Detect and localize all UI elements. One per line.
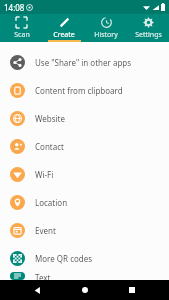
staticText: History	[94, 30, 118, 40]
button[interactable]: Website	[0, 104, 169, 132]
button[interactable]: Location	[0, 188, 169, 216]
button[interactable]: History	[85, 14, 127, 42]
staticText: Settings	[135, 30, 162, 40]
button[interactable]: Wi-Fi	[0, 160, 169, 188]
staticText: More QR codes	[35, 253, 93, 264]
staticText: Create	[53, 30, 75, 40]
button[interactable]: Event	[0, 216, 169, 244]
staticText: Event	[35, 225, 56, 236]
staticText: Content from clipboard	[35, 85, 123, 96]
button[interactable]: Content from clipboard	[0, 76, 169, 104]
staticText: Website	[35, 113, 66, 124]
staticText: Use "Share" in other apps	[35, 57, 132, 68]
staticText: 14:08	[4, 2, 25, 13]
button[interactable]: More QR codes	[0, 244, 169, 272]
button[interactable]: Scan	[0, 14, 43, 42]
button[interactable]: Recents	[122, 280, 142, 300]
staticText: Wi-Fi	[35, 169, 54, 180]
button[interactable]: Back	[27, 280, 47, 300]
button[interactable]: Settings	[127, 14, 169, 42]
button[interactable]: Use "Share" in other apps	[0, 48, 169, 76]
staticText: Text	[35, 272, 51, 280]
staticText: Scan	[14, 30, 30, 40]
staticText: Location	[35, 197, 68, 208]
staticText: Contact	[35, 141, 64, 152]
button[interactable]: Create	[43, 14, 85, 42]
button[interactable]: Home	[75, 280, 95, 300]
button[interactable]: Contact	[0, 132, 169, 160]
button[interactable]: Text	[0, 272, 169, 280]
